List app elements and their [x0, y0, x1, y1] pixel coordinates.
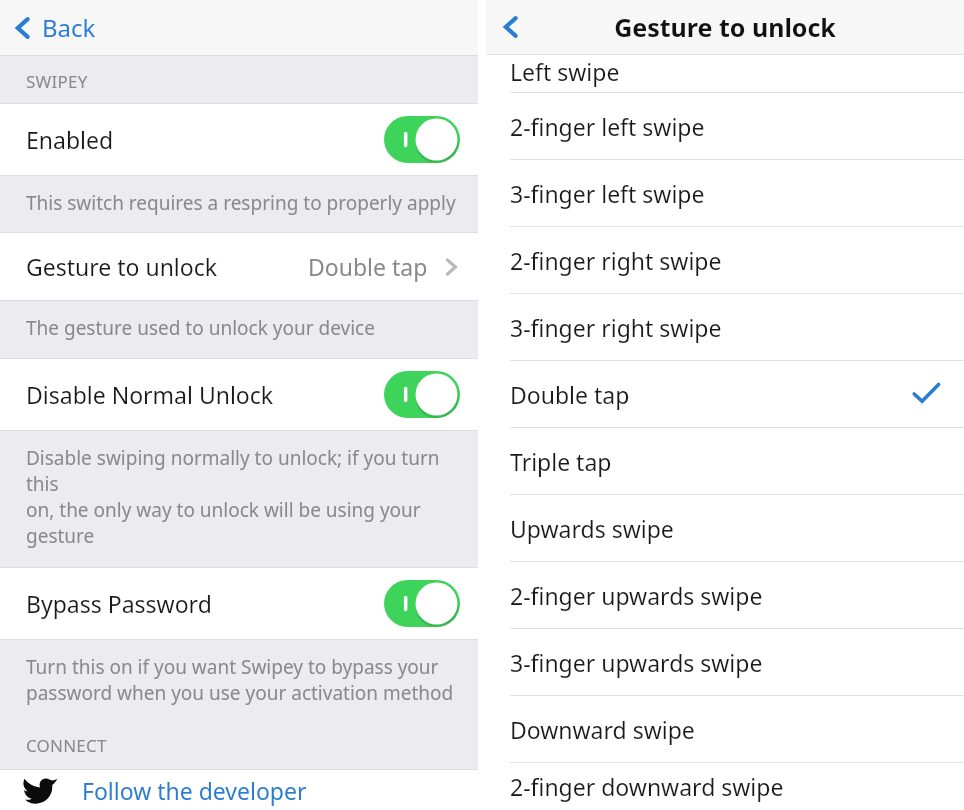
button[interactable]: 2-finger left swipe: [486, 93, 964, 159]
button[interactable]: 3-finger left swipe: [486, 160, 964, 226]
staticText: password when you use your activation me…: [26, 680, 454, 706]
staticText: Triple tap: [510, 446, 940, 477]
staticText: Left swipe: [510, 56, 620, 87]
button[interactable]: Disable Normal Unlock: [0, 359, 478, 430]
button[interactable]: 3-finger right swipe: [486, 294, 964, 360]
button[interactable]: Back: [0, 5, 112, 50]
button[interactable]: Toggle: [384, 371, 460, 418]
staticText: 2-finger left swipe: [510, 111, 940, 142]
staticText: Disable Normal Unlock: [26, 379, 384, 410]
button[interactable]: Back: [486, 6, 538, 48]
staticText: Bypass Password: [26, 588, 384, 619]
button[interactable]: Bypass Password: [0, 568, 478, 639]
staticText: 2-finger upwards swipe: [510, 580, 940, 611]
staticText: SWIPEY: [26, 70, 88, 93]
button[interactable]: Toggle: [384, 580, 460, 627]
button[interactable]: 3-finger upwards swipe: [486, 629, 964, 695]
staticText: on, the only way to unlock will be using…: [26, 497, 464, 549]
staticText: This switch requires a respring to prope…: [26, 190, 456, 216]
staticText: Gesture to unlock: [26, 251, 308, 282]
staticText: Double tap: [510, 379, 912, 410]
staticText: Follow the developer: [82, 775, 307, 806]
button[interactable]: Gesture to unlock: [0, 233, 478, 300]
staticText: 3-finger right swipe: [510, 312, 940, 343]
staticText: 3-finger upwards swipe: [510, 647, 940, 678]
staticText: Upwards swipe: [510, 513, 940, 544]
button[interactable]: Double tap: [486, 361, 964, 427]
button[interactable]: Follow the developer: [0, 770, 478, 810]
staticText: Back: [42, 11, 96, 44]
button[interactable]: Toggle: [384, 116, 460, 163]
button[interactable]: Downward swipe: [486, 696, 964, 762]
staticText: 3-finger left swipe: [510, 178, 940, 209]
staticText: CONNECT: [26, 734, 107, 757]
button[interactable]: Triple tap: [486, 428, 964, 494]
staticText: Double tap: [308, 251, 428, 282]
staticText: Disable swiping normally to unlock; if y…: [26, 445, 464, 497]
button[interactable]: 2-finger downward swipe: [486, 763, 964, 810]
button[interactable]: Upwards swipe: [486, 495, 964, 561]
button[interactable]: Enabled: [0, 104, 478, 175]
staticText: Enabled: [26, 124, 384, 155]
staticText: Turn this on if you want Swipey to bypas…: [26, 654, 439, 680]
staticText: Gesture to unlock: [614, 10, 836, 44]
staticText: The gesture used to unlock your device: [26, 315, 375, 341]
staticText: 2-finger right swipe: [510, 245, 940, 276]
staticText: Downward swipe: [510, 714, 940, 745]
button[interactable]: 2-finger right swipe: [486, 227, 964, 293]
button[interactable]: 2-finger upwards swipe: [486, 562, 964, 628]
staticText: 2-finger downward swipe: [510, 771, 940, 802]
button[interactable]: Left swipe: [486, 55, 964, 92]
